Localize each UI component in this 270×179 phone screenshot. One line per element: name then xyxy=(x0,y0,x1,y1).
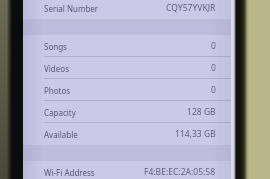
button[interactable]: Photos xyxy=(23,79,231,101)
staticText: Videos xyxy=(44,63,69,74)
staticText: 128 GB xyxy=(187,106,216,118)
button[interactable]: Videos xyxy=(23,57,231,79)
staticText: 0 xyxy=(211,62,216,74)
staticText: Songs xyxy=(44,41,67,52)
staticText: Photos xyxy=(44,85,71,96)
button[interactable]: Songs xyxy=(23,35,231,57)
button[interactable]: Available xyxy=(23,123,231,145)
button[interactable]: Capacity xyxy=(23,101,231,123)
staticText: CQY57YVKJR xyxy=(166,2,216,14)
button[interactable]: Serial Number xyxy=(23,0,231,19)
staticText: Wi-Fi Address xyxy=(44,167,95,178)
staticText: Serial Number xyxy=(44,3,99,14)
staticText: Available xyxy=(44,129,78,140)
staticText: Capacity xyxy=(44,107,76,118)
staticText: 0 xyxy=(211,40,216,52)
staticText: 0 xyxy=(211,84,216,96)
staticText: 114,33 GB xyxy=(175,128,216,140)
button[interactable]: Wi-Fi Address xyxy=(23,161,231,179)
staticText: F4:BE:EC:2A:05:58 xyxy=(144,166,216,178)
